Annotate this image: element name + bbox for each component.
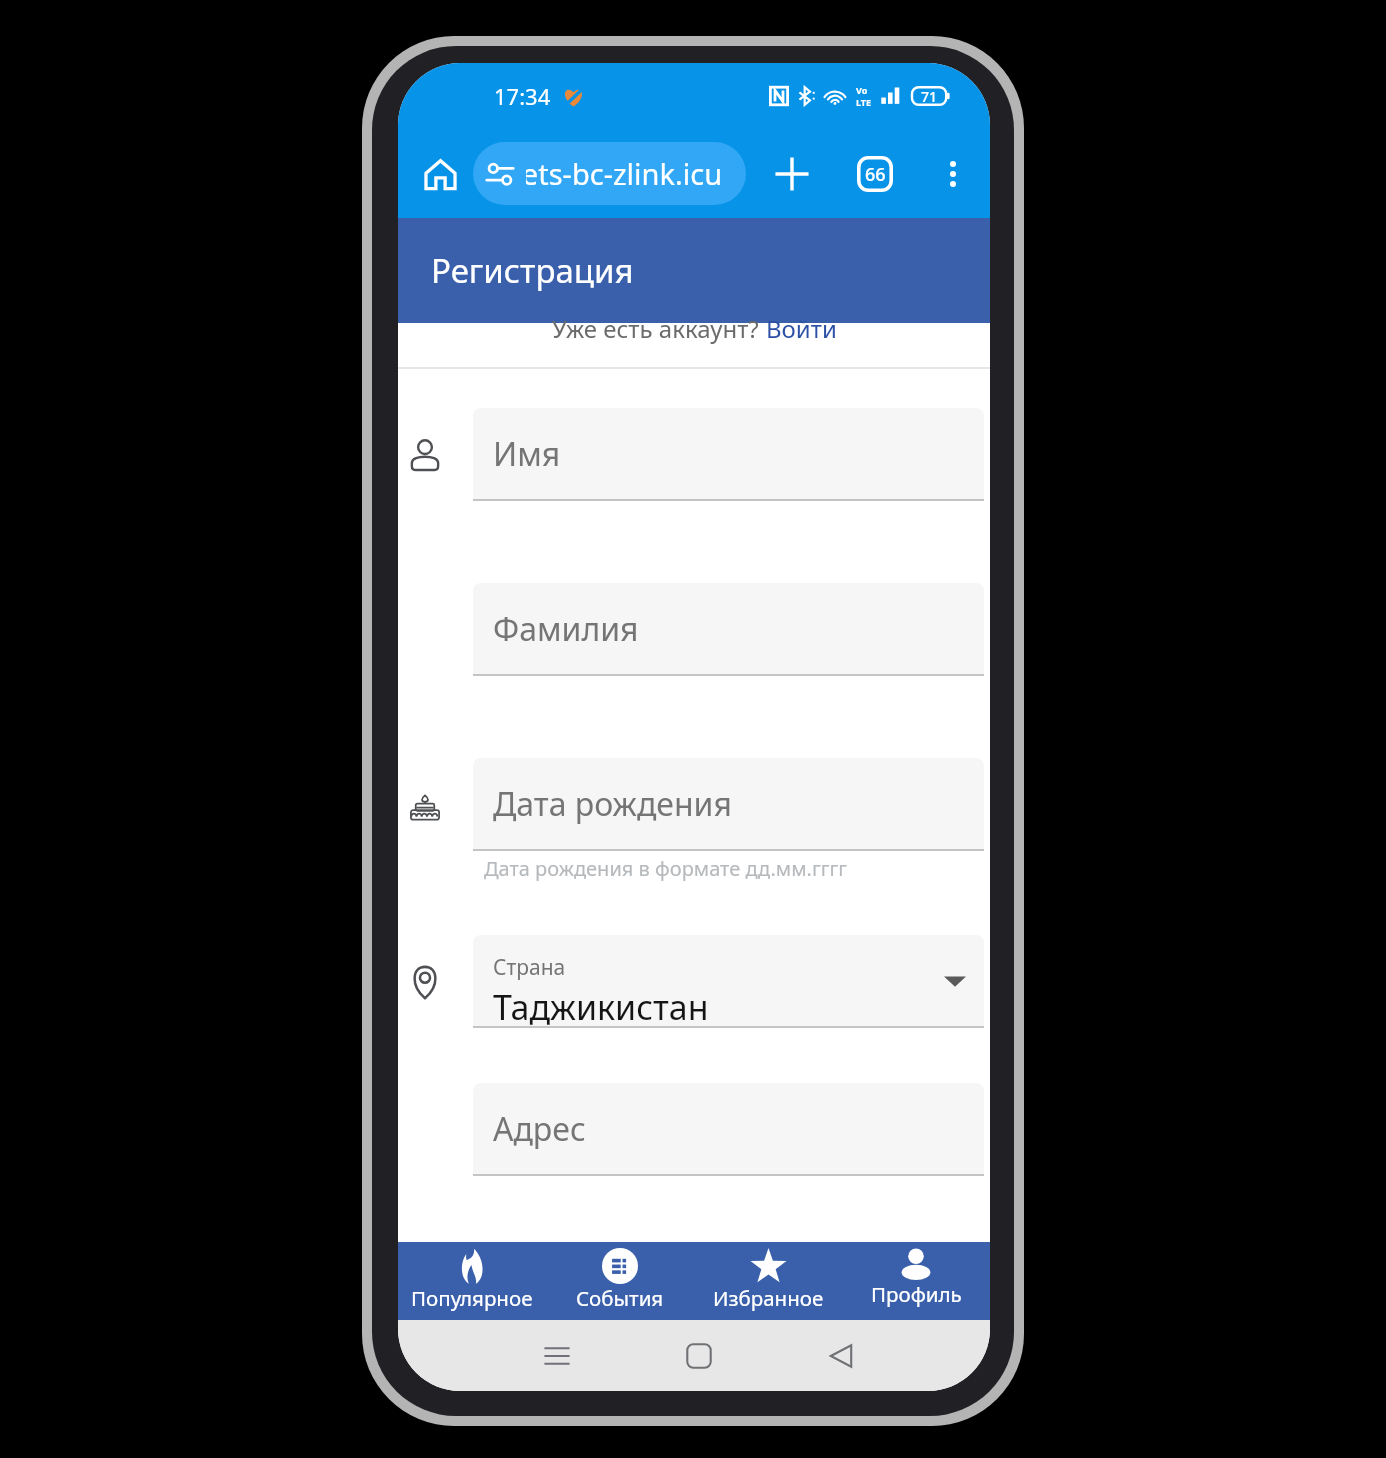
button[interactable]: New tab [764, 146, 820, 202]
staticText: Дата рождения в формате дд.мм.гггг [484, 855, 847, 882]
staticText: 17:34 [494, 81, 551, 111]
staticText: Уже есть аккаунт? [552, 312, 766, 345]
button[interactable]: Home [670, 1327, 728, 1385]
button[interactable]: bets-bc-zlink.icu [473, 142, 746, 205]
button[interactable]: Дата рождения [473, 758, 984, 849]
staticText: Имя [493, 432, 561, 476]
staticText: 71 [921, 87, 938, 106]
staticText: Дата рождения [493, 782, 732, 826]
staticText: Профиль [871, 1280, 962, 1308]
button[interactable]: Популярное [398, 1242, 546, 1320]
staticText: Vo [856, 84, 868, 96]
button[interactable]: Фамилия [473, 583, 984, 674]
button[interactable]: Имя [473, 408, 984, 499]
button[interactable]: Адрес [473, 1083, 984, 1174]
button[interactable]: Избранное [694, 1242, 842, 1320]
staticText: LTE [856, 96, 872, 108]
staticText: Избранное [713, 1284, 824, 1312]
staticText: 66 [865, 162, 886, 187]
staticText: Регистрация [431, 248, 634, 293]
staticText: События [576, 1284, 664, 1312]
button[interactable]: Recents [528, 1327, 586, 1385]
button[interactable]: События [546, 1242, 694, 1320]
staticText: Таджикистан [493, 984, 709, 1026]
staticText: Адрес [493, 1107, 586, 1151]
button[interactable]: More options [927, 148, 979, 200]
button[interactable]: Tabs [847, 146, 903, 202]
button[interactable]: Уже есть аккаунт? [398, 323, 990, 367]
button[interactable]: Страна [473, 935, 984, 1026]
staticText: Войти [766, 312, 837, 345]
staticText: Популярное [411, 1284, 533, 1312]
staticText: bets-bc-zlink.icu [526, 154, 723, 193]
button[interactable]: Home [416, 150, 464, 198]
button[interactable]: Профиль [842, 1242, 990, 1320]
staticText: Страна [493, 953, 566, 982]
button[interactable]: Back [812, 1327, 870, 1385]
staticText: Фамилия [493, 607, 639, 651]
